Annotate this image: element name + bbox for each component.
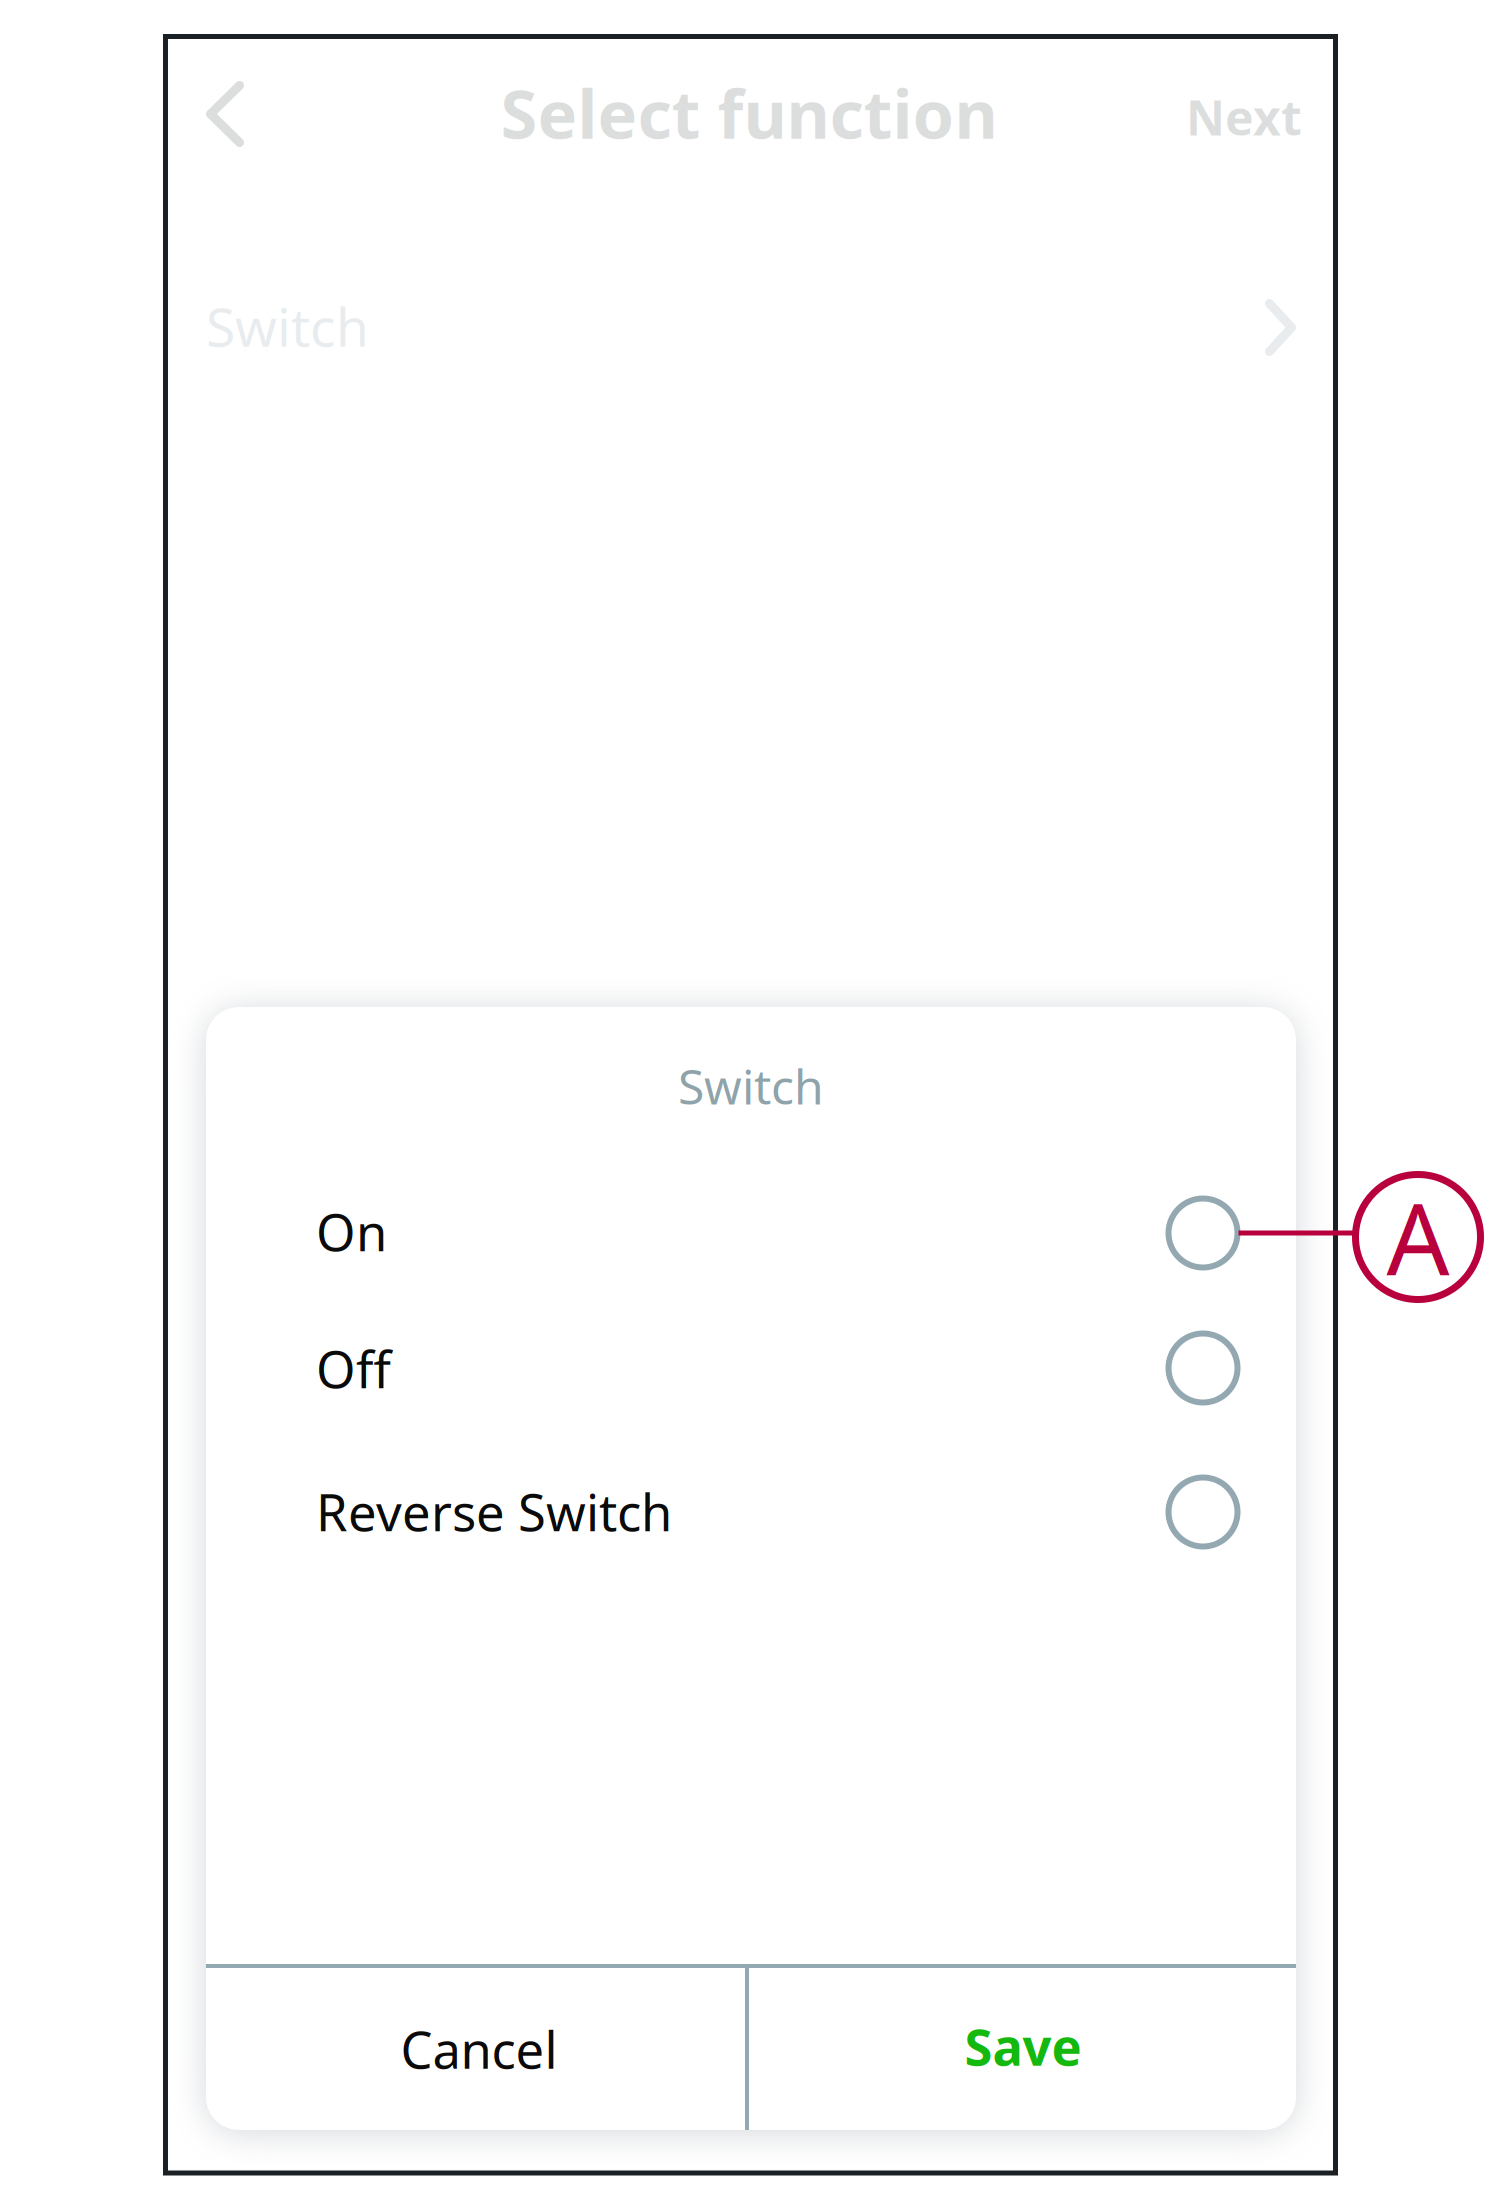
button[interactable]: Switch [0, 0, 1500, 2208]
staticText: A [1386, 1171, 1449, 1302]
staticText: Switch [206, 291, 369, 361]
button[interactable]: Off [0, 0, 1500, 2208]
staticText: Cancel [400, 2015, 557, 2083]
staticText: On [316, 1198, 387, 1265]
button[interactable]: Cancel [0, 0, 1500, 2208]
staticText: Next [1186, 85, 1302, 149]
staticText: Save [964, 2012, 1081, 2080]
button[interactable]: On [0, 0, 1500, 2208]
staticText: Select function [500, 69, 997, 157]
staticText: Reverse Switch [316, 1478, 672, 1545]
staticText: Switch [678, 1054, 824, 1118]
button[interactable]: Back [0, 0, 1500, 2208]
button[interactable]: Save [0, 0, 1500, 2208]
button[interactable]: Next [0, 0, 1500, 2208]
staticText: Off [316, 1335, 391, 1402]
button[interactable]: Reverse Switch [0, 0, 1500, 2208]
